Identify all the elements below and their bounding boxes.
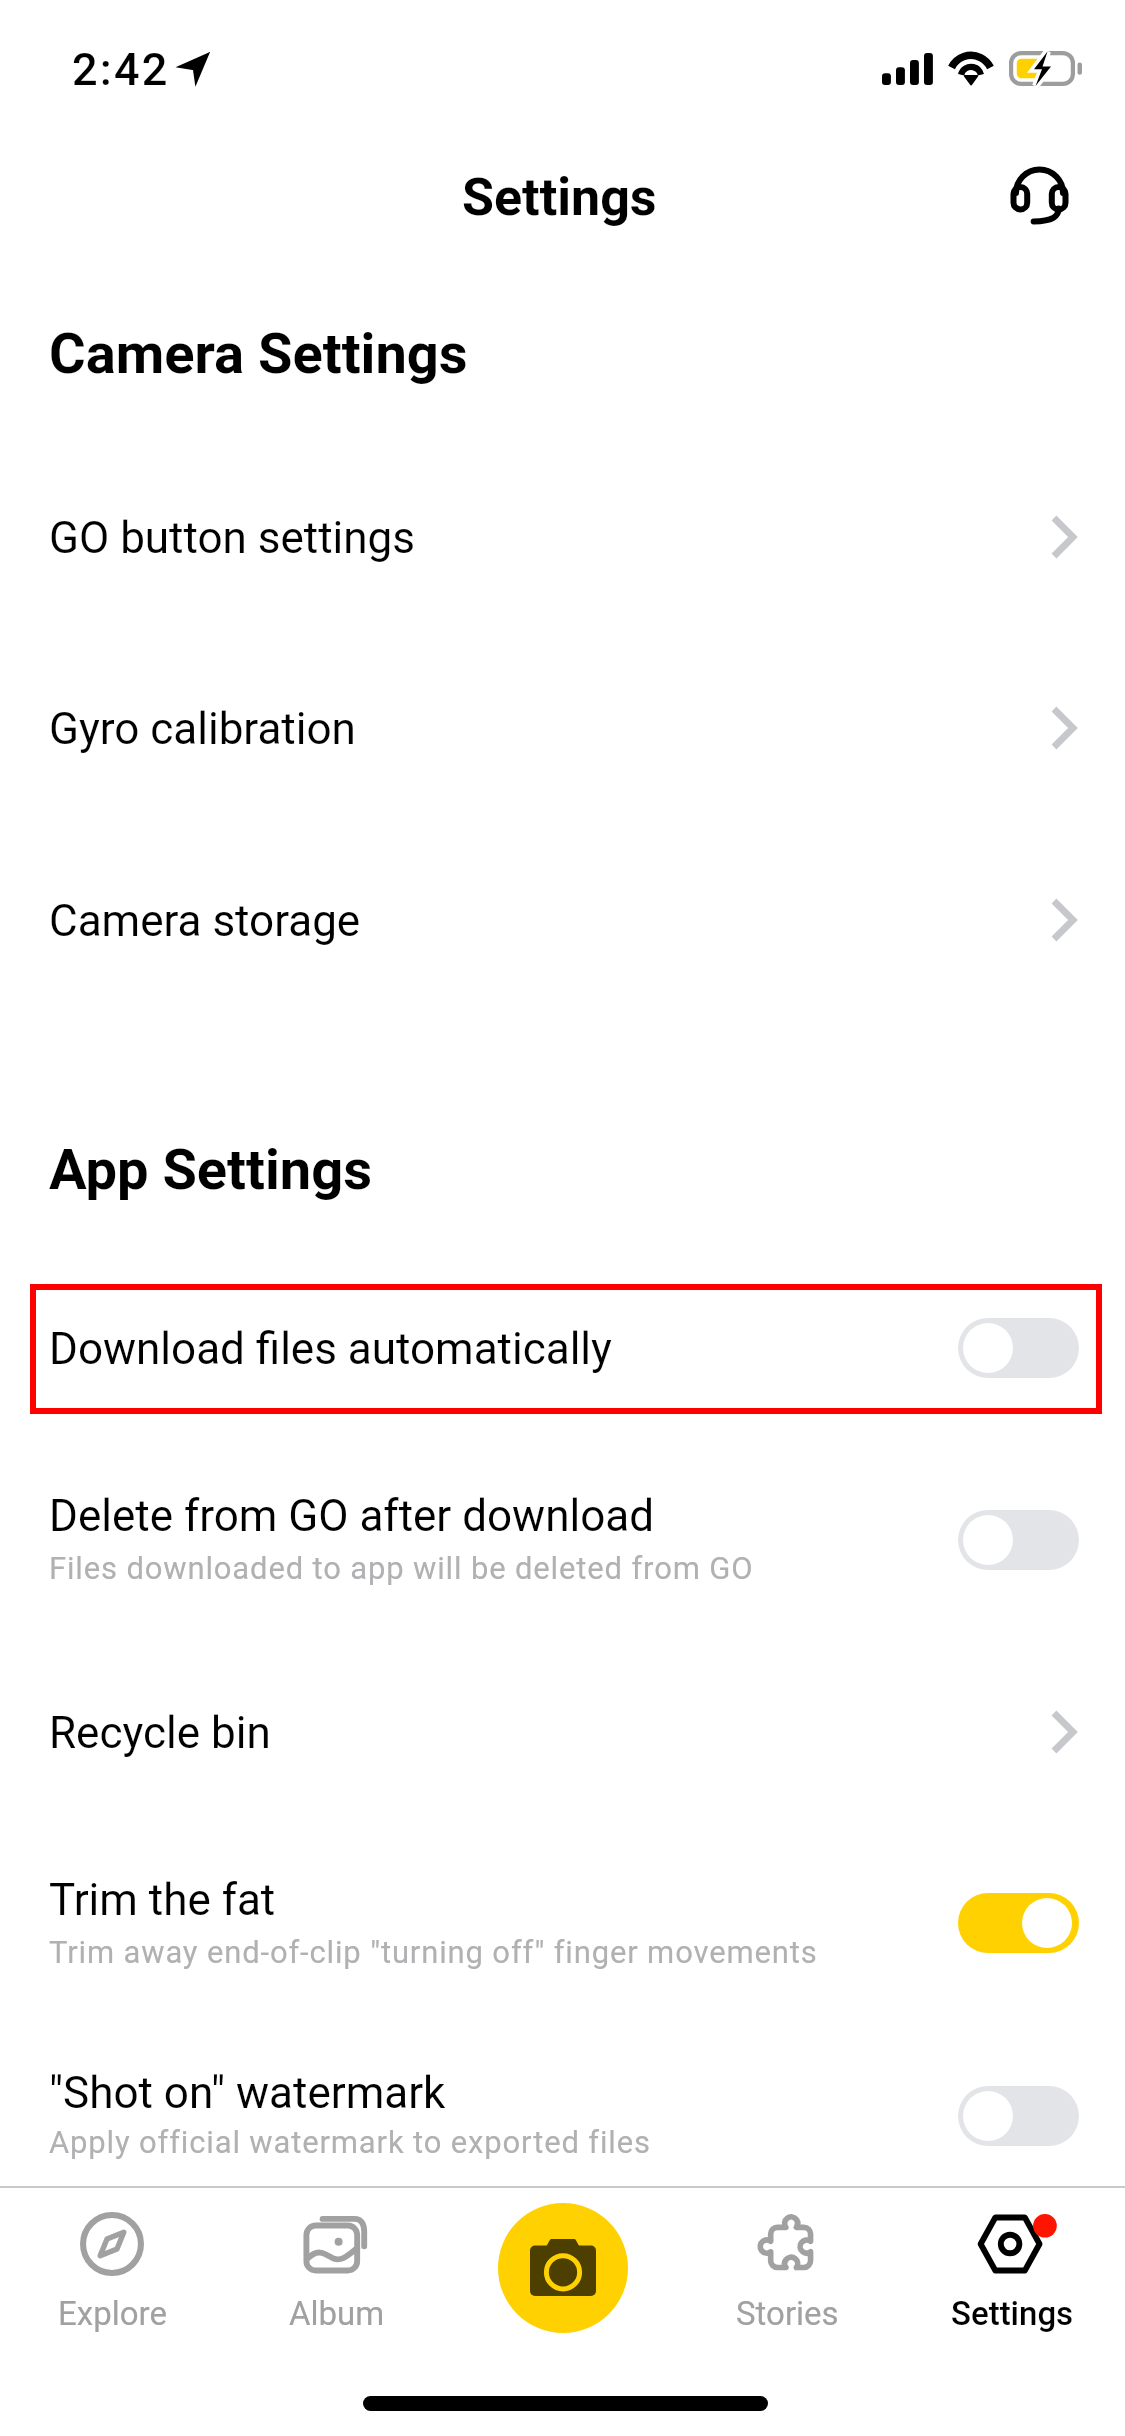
button[interactable]: Album [225,2192,449,2376]
staticText: Download files automatically [49,1323,612,1375]
button[interactable]: Switch off [958,1510,1079,1570]
staticText: Camera storage [49,895,361,947]
button[interactable]: Download files automatically [0,1284,1125,1414]
staticText: Gyro calibration [49,703,356,755]
button[interactable]: Support [993,150,1085,242]
button[interactable]: Switch off [958,1318,1079,1378]
staticText: Stories [736,2294,839,2333]
button[interactable]: Camera [498,2203,628,2333]
staticText: Explore [58,2294,167,2333]
staticText: 2:42 [72,43,170,96]
staticText: Apply official watermark to exported fil… [49,2124,651,2160]
button[interactable]: Gyro calibration [0,663,1125,793]
staticText: Settings [951,2294,1074,2333]
staticText: Files downloaded to app will be deleted … [49,1550,754,1586]
button[interactable]: "Shot on" watermark [0,2038,1125,2178]
staticText: GO button settings [49,512,416,564]
staticText: "Shot on" watermark [49,2067,446,2119]
button[interactable]: Stories [675,2192,899,2376]
staticText: Trim away end-of-clip "turning off" fing… [49,1934,818,1970]
button[interactable]: Camera storage [0,855,1125,985]
button[interactable]: Switch on [958,1893,1079,1953]
staticText: Settings [462,167,657,228]
button[interactable]: Delete from GO after download [0,1460,1125,1600]
staticText: Recycle bin [49,1707,271,1759]
button[interactable]: Settings [900,2192,1124,2376]
button[interactable]: GO button settings [0,472,1125,602]
staticText: Trim the fat [49,1874,276,1926]
button[interactable]: Explore [0,2192,224,2376]
staticText: App Settings [49,1137,372,1203]
staticText: Camera Settings [49,321,468,387]
button[interactable]: Switch off [958,2086,1079,2146]
staticText: Album [289,2294,385,2333]
button[interactable]: Recycle bin [0,1667,1125,1797]
staticText: Delete from GO after download [49,1490,654,1542]
button[interactable]: Trim the fat [0,1845,1125,1985]
